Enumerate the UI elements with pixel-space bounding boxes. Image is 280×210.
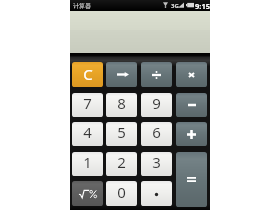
button[interactable]: Square root and percent xyxy=(72,181,103,206)
button[interactable]: 1 xyxy=(72,152,103,176)
staticText: 2 xyxy=(117,152,126,172)
staticText: 6 xyxy=(152,122,161,142)
staticText: 8 xyxy=(117,93,126,113)
staticText: 计算器 xyxy=(73,2,91,10)
staticText: 5 xyxy=(117,122,126,142)
button[interactable]: Divide xyxy=(141,62,172,87)
button[interactable]: Decimal point xyxy=(141,181,172,206)
button[interactable]: 6 xyxy=(141,122,172,146)
staticText: 3G xyxy=(171,2,179,10)
button[interactable]: 0 xyxy=(106,181,137,206)
button[interactable]: Equals xyxy=(176,152,207,207)
button[interactable]: 4 xyxy=(72,122,103,146)
staticText: 4 xyxy=(83,122,92,142)
button[interactable]: Minus xyxy=(176,93,207,117)
staticText: 9 xyxy=(152,93,161,113)
button[interactable]: 7 xyxy=(72,93,103,117)
button[interactable]: 3 xyxy=(141,152,172,176)
staticText: 1 xyxy=(83,152,92,172)
button[interactable]: 8 xyxy=(106,93,137,117)
button[interactable]: Multiply xyxy=(176,62,207,87)
button[interactable]: 9 xyxy=(141,93,172,117)
staticText: 7 xyxy=(83,93,92,113)
button[interactable]: 2 xyxy=(106,152,137,176)
button[interactable]: Clear xyxy=(72,62,103,87)
button[interactable]: Plus xyxy=(176,122,207,146)
staticText: 0 xyxy=(117,182,126,202)
button[interactable]: Delete xyxy=(106,62,137,87)
staticText: 9:15 xyxy=(195,1,210,11)
button[interactable]: 5 xyxy=(106,122,137,146)
staticText: 3 xyxy=(152,152,161,172)
staticText: C xyxy=(83,64,93,84)
